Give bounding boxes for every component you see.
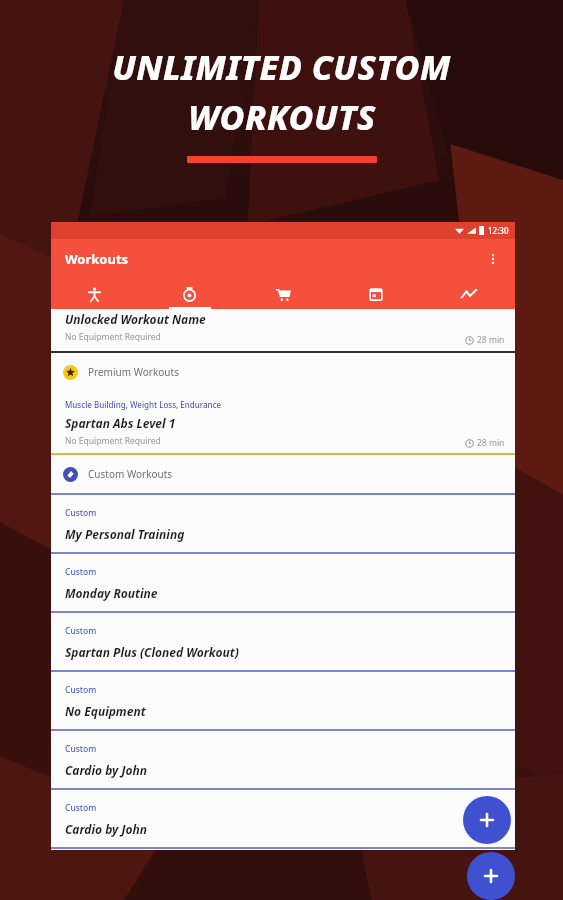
button[interactable]: Custom <box>51 790 515 847</box>
button[interactable]: Custom <box>51 495 515 552</box>
button[interactable]: Custom <box>51 672 515 729</box>
button[interactable]: Custom <box>51 731 515 788</box>
button[interactable]: Timer <box>143 279 236 309</box>
staticText: WORKOUTS <box>188 94 376 140</box>
staticText: My Personal Training <box>65 526 185 542</box>
staticText: 12:30 <box>488 225 509 236</box>
staticText: Spartan Abs Level 1 <box>65 415 176 431</box>
button[interactable]: Custom <box>51 554 515 611</box>
staticText: Workouts <box>65 250 129 268</box>
staticText: Custom Workouts <box>88 467 173 481</box>
button[interactable]: Store <box>236 279 329 309</box>
staticText: Unlocked Workout Name <box>65 311 206 327</box>
staticText: Custom <box>65 566 97 578</box>
staticText: UNLIMITED CUSTOM <box>112 44 451 90</box>
staticText: Custom <box>65 743 97 755</box>
staticText: Custom <box>65 802 97 814</box>
button[interactable]: Premium Workouts <box>51 353 515 391</box>
staticText: Custom <box>65 625 97 637</box>
staticText: Spartan Plus (Cloned Workout) <box>65 644 239 660</box>
button[interactable]: Add <box>467 852 515 900</box>
button[interactable]: More options <box>479 245 507 273</box>
staticText: Premium Workouts <box>88 365 179 379</box>
button[interactable]: Progress <box>422 279 515 309</box>
staticText: Monday Routine <box>65 585 158 601</box>
staticText: Muscle Building, Weight Loss, Endurance <box>65 399 222 410</box>
button[interactable]: Custom Workouts <box>51 455 515 493</box>
button[interactable]: Add workout <box>463 796 511 844</box>
staticText: No Equipment Required <box>65 331 161 343</box>
button[interactable]: Calendar <box>329 279 422 309</box>
staticText: 28 min <box>477 334 505 346</box>
staticText: No Equipment <box>65 703 146 719</box>
staticText: Cardio by John <box>65 762 147 778</box>
staticText: Cardio by John <box>65 821 147 837</box>
staticText: Custom <box>65 507 97 519</box>
button[interactable]: Custom <box>51 613 515 670</box>
staticText: Custom <box>65 684 97 696</box>
button[interactable]: Workouts tab <box>51 279 143 309</box>
staticText: No Equipment Required <box>65 435 161 447</box>
staticText: 28 min <box>477 437 505 449</box>
